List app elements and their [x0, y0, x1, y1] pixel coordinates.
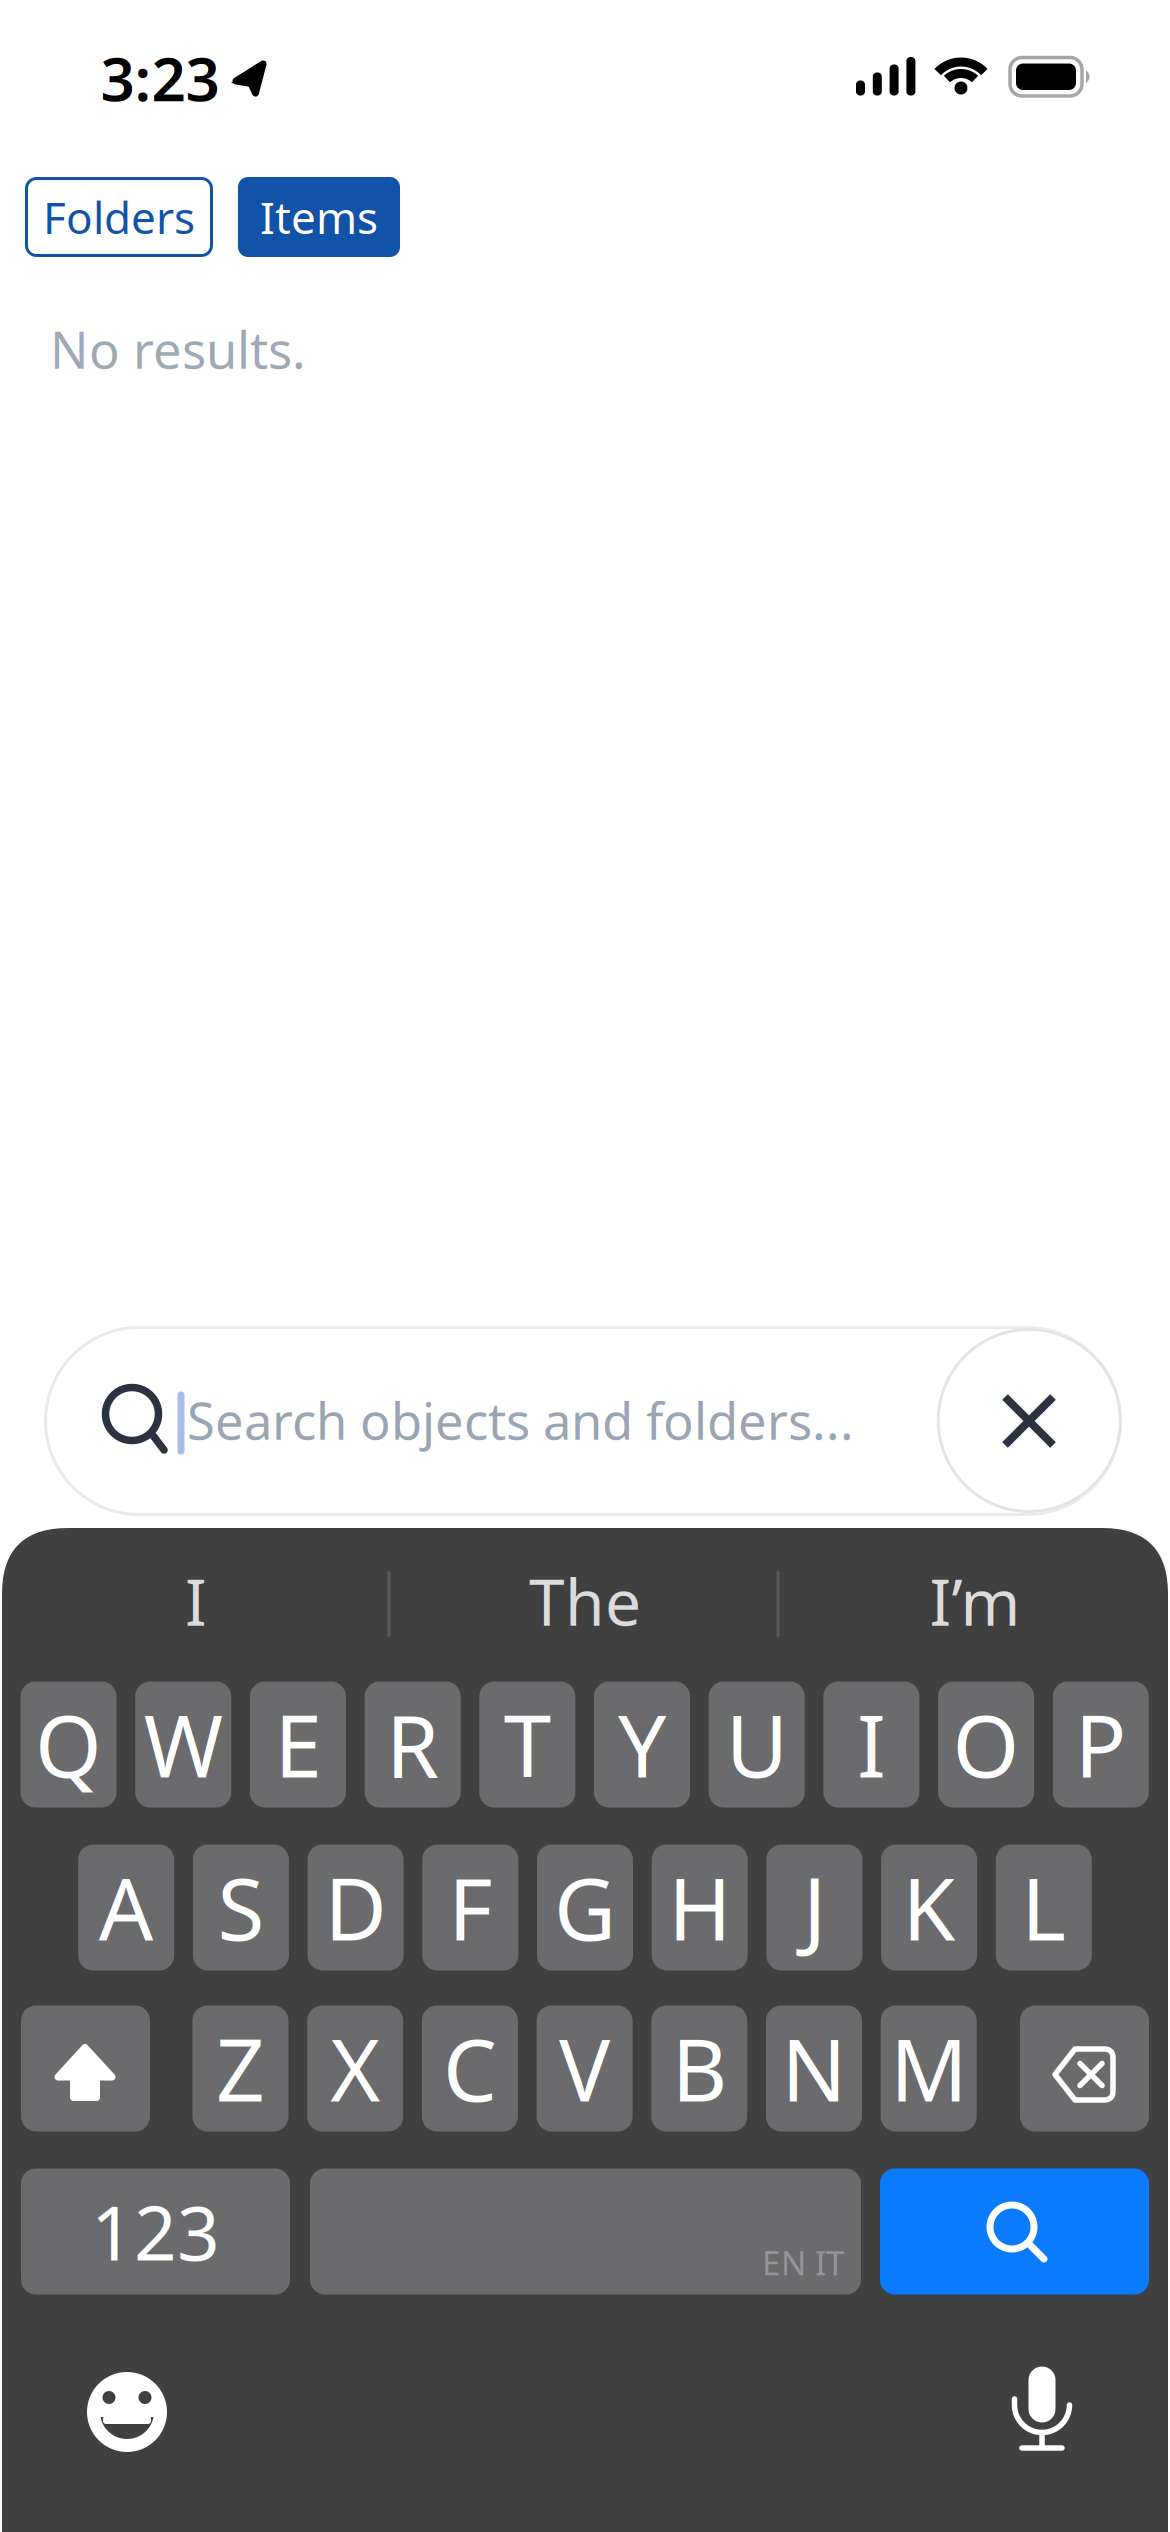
staticText: P	[1075, 1688, 1127, 1801]
staticText: D	[325, 1851, 387, 1964]
button[interactable]: Folders	[25, 177, 213, 257]
button[interactable]: R	[365, 1681, 461, 1807]
button[interactable]: Items	[238, 177, 400, 257]
staticText: Z	[216, 2012, 265, 2125]
button[interactable]: H	[652, 1844, 748, 1970]
button[interactable]: V	[537, 2005, 633, 2131]
button[interactable]: P	[1053, 1681, 1149, 1807]
button[interactable]: U	[709, 1681, 805, 1807]
staticText: X	[330, 2012, 380, 2125]
staticText: V	[559, 2012, 610, 2125]
staticText: Y	[618, 1688, 666, 1801]
staticText: N	[781, 2012, 846, 2125]
staticText: K	[903, 1851, 956, 1964]
staticText: C	[443, 2012, 497, 2125]
button[interactable]: G	[537, 1844, 633, 1970]
staticText: R	[386, 1688, 439, 1801]
button[interactable]: The	[405, 1556, 765, 1646]
button[interactable]: Z	[192, 2005, 288, 2131]
button[interactable]: M	[881, 2005, 977, 2131]
button[interactable]	[21, 2005, 150, 2131]
staticText: 123	[91, 2182, 220, 2281]
button[interactable]: C	[422, 2005, 518, 2131]
button[interactable]: S	[193, 1844, 289, 1970]
staticText: E	[274, 1688, 321, 1801]
staticText: O	[953, 1688, 1020, 1801]
staticText: I	[857, 1688, 886, 1801]
button[interactable]: D	[308, 1844, 404, 1970]
button[interactable]: X	[307, 2005, 403, 2131]
staticText: G	[554, 1851, 616, 1964]
button[interactable]	[87, 2372, 167, 2452]
button[interactable]	[992, 2352, 1092, 2462]
staticText: W	[144, 1688, 223, 1801]
button[interactable]: Q	[20, 1681, 116, 1807]
button[interactable]	[937, 1328, 1122, 1513]
button[interactable]: Y	[594, 1681, 690, 1807]
staticText: F	[448, 1851, 492, 1964]
staticText: B	[672, 2012, 727, 2125]
button[interactable]: 123	[21, 2168, 290, 2294]
button[interactable]: B	[651, 2005, 747, 2131]
button[interactable]: O	[938, 1681, 1034, 1807]
button[interactable]	[880, 2168, 1149, 2294]
button[interactable]: I	[16, 1556, 376, 1646]
button[interactable]: A	[78, 1844, 174, 1970]
button[interactable]: J	[766, 1844, 862, 1970]
button[interactable]: W	[135, 1681, 231, 1807]
staticText: I	[185, 1558, 207, 1643]
staticText: L	[1021, 1851, 1066, 1964]
button[interactable]: T	[479, 1681, 575, 1807]
button[interactable]: K	[881, 1844, 977, 1970]
staticText: Q	[35, 1688, 102, 1801]
button[interactable]: I	[823, 1681, 919, 1807]
staticText: T	[504, 1688, 551, 1801]
staticText: No results.	[50, 315, 306, 383]
button[interactable]: EN IT	[310, 2168, 861, 2294]
staticText: Folders	[43, 188, 195, 246]
staticText: U	[726, 1688, 788, 1801]
button[interactable]: L	[996, 1844, 1092, 1970]
staticText: A	[99, 1851, 154, 1964]
staticText: Search objects and folders...	[187, 1386, 854, 1454]
staticText: Items	[260, 188, 378, 246]
staticText: 3:23	[100, 38, 219, 118]
button[interactable]: N	[766, 2005, 862, 2131]
staticText: H	[668, 1851, 731, 1964]
button[interactable]: F	[422, 1844, 518, 1970]
staticText: J	[803, 1851, 826, 1964]
staticText: S	[217, 1851, 264, 1964]
button[interactable]	[44, 1326, 1122, 1516]
staticText: M	[890, 2012, 967, 2125]
button[interactable]: E	[250, 1681, 346, 1807]
staticText: The	[529, 1558, 641, 1643]
button[interactable]: I’m	[795, 1556, 1155, 1646]
staticText: I’m	[929, 1558, 1020, 1643]
staticText: EN IT	[762, 2240, 845, 2284]
button[interactable]	[1020, 2005, 1149, 2131]
